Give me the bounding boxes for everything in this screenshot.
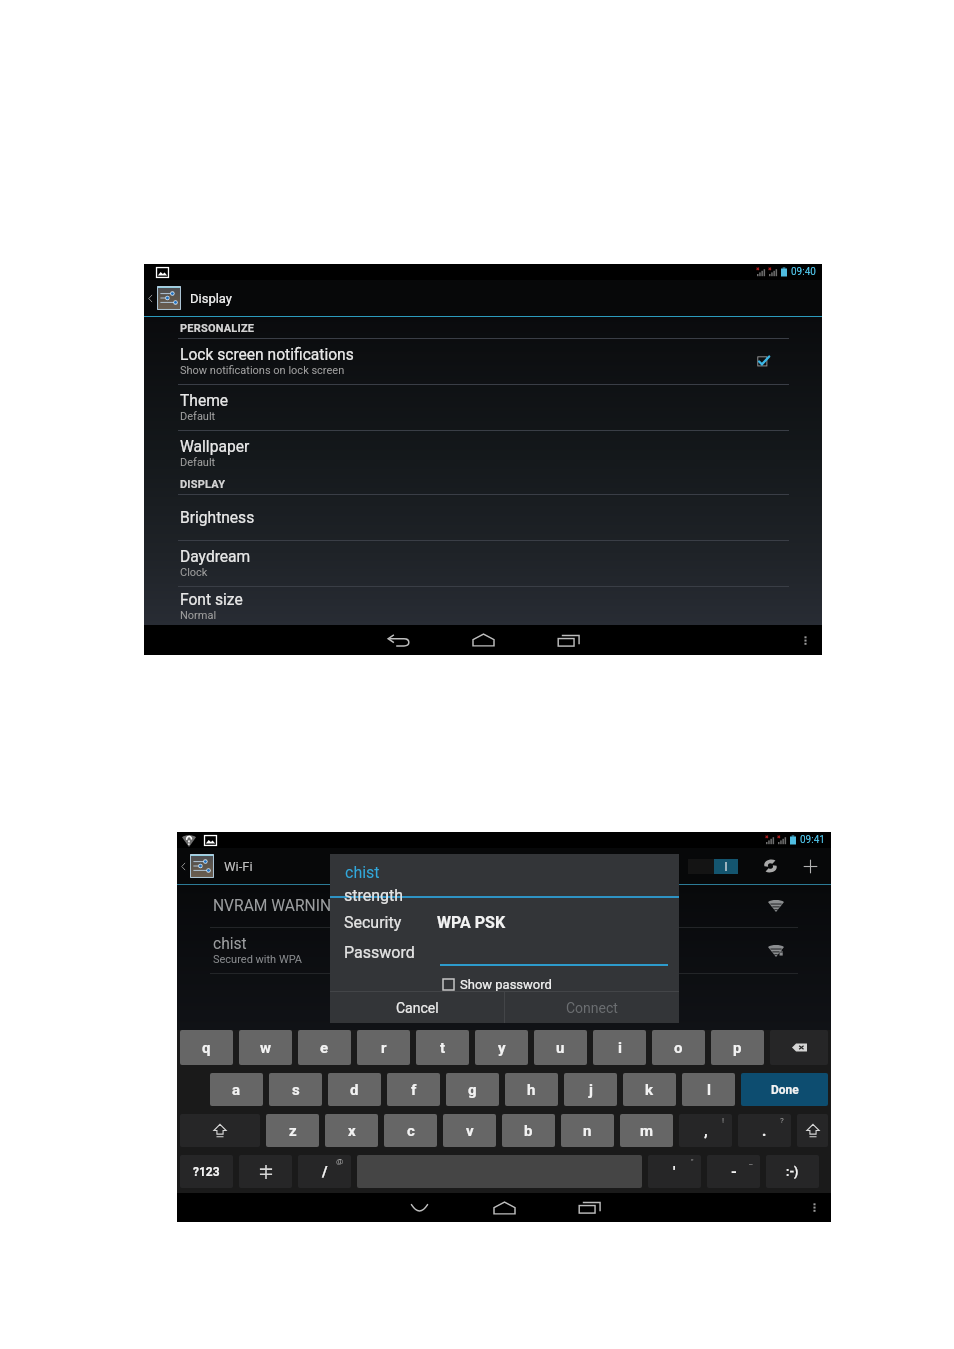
button[interactable]: Done (741, 1073, 828, 1106)
button[interactable]: d (328, 1073, 381, 1106)
staticText: f (411, 1081, 417, 1099)
button[interactable]: x (325, 1114, 378, 1147)
staticText: o (674, 1039, 683, 1057)
button[interactable]: m (620, 1114, 673, 1147)
button[interactable]: Lock screen notifications (144, 339, 822, 384)
button[interactable]: Back (356, 625, 441, 655)
staticText: t (440, 1039, 446, 1057)
button[interactable]: p (711, 1030, 764, 1065)
staticText: Show password (460, 977, 552, 992)
staticText: DISPLAY (180, 478, 226, 491)
button[interactable]: . (738, 1114, 791, 1147)
staticText: z (289, 1122, 297, 1140)
staticText: Connect (566, 1000, 618, 1016)
button[interactable]: ?123 (180, 1155, 233, 1188)
staticText: g (468, 1081, 477, 1099)
button[interactable]: / (298, 1155, 351, 1188)
button[interactable]: Back (144, 280, 232, 316)
button[interactable]: j (564, 1073, 617, 1106)
button[interactable]: r (357, 1030, 410, 1065)
button[interactable]: NVRAM WARNING: Err = 0x10 (177, 885, 831, 927)
button[interactable]: Daydream (144, 541, 822, 586)
button[interactable]: Home (441, 625, 526, 655)
button[interactable]: h (505, 1073, 558, 1106)
staticText: , (704, 1122, 708, 1140)
button[interactable]: w (239, 1030, 292, 1065)
button[interactable]: i (593, 1030, 646, 1065)
button[interactable]: a (210, 1073, 263, 1106)
staticText: Daydream (180, 548, 251, 566)
button[interactable]: Back (377, 1193, 462, 1222)
staticText: " (691, 1157, 694, 1166)
button[interactable]: Cancel (330, 992, 504, 1023)
staticText: s (292, 1081, 300, 1099)
staticText: h (527, 1081, 536, 1099)
button[interactable]: Scan (750, 848, 790, 884)
button[interactable]: Wallpaper (144, 431, 822, 476)
button[interactable]: Back (177, 848, 253, 884)
staticText: r (381, 1039, 387, 1057)
button[interactable]: z (266, 1114, 319, 1147)
staticText: WPA PSK (437, 913, 506, 932)
button[interactable]: More options (797, 1193, 831, 1222)
button[interactable]: l (682, 1073, 735, 1106)
staticText: Clock (180, 566, 208, 579)
button[interactable]: Recent apps (526, 625, 611, 655)
staticText: ' (673, 1163, 676, 1181)
staticText: Font size (180, 591, 243, 609)
staticText: k (645, 1081, 654, 1099)
button[interactable]: b (502, 1114, 555, 1147)
button[interactable]: Add network (790, 848, 830, 884)
button[interactable]: Brightness (144, 495, 822, 540)
staticText: Theme (180, 392, 229, 410)
staticText: u (556, 1039, 565, 1057)
button[interactable]: o (652, 1030, 705, 1065)
staticText: Secured with WPA (213, 953, 303, 966)
staticText: chist (345, 863, 380, 882)
button[interactable]: Show password (443, 977, 552, 992)
button[interactable]: c (384, 1114, 437, 1147)
button[interactable]: Wi-Fi on/off (688, 859, 738, 874)
staticText: y (498, 1039, 506, 1057)
staticText: q (202, 1039, 211, 1057)
button[interactable]: Font size (144, 587, 822, 625)
button[interactable]: n (561, 1114, 614, 1147)
button[interactable]: Home (462, 1193, 547, 1222)
staticText: Cancel (396, 1000, 439, 1016)
staticText: PERSONALIZE (180, 322, 255, 335)
button[interactable]: q (180, 1030, 233, 1065)
button[interactable]: Recent apps (547, 1193, 632, 1222)
button[interactable]: - (707, 1155, 760, 1188)
staticText: :-) (786, 1165, 799, 1179)
button[interactable]: g (446, 1073, 499, 1106)
button[interactable]: Connect (505, 992, 679, 1023)
button[interactable]: f (387, 1073, 440, 1106)
button[interactable]: ' (648, 1155, 701, 1188)
staticText: Wallpaper (180, 438, 250, 456)
button[interactable]: chist (177, 928, 831, 973)
button[interactable]: Shift right (797, 1114, 828, 1147)
button[interactable]: u (534, 1030, 587, 1065)
button[interactable]: More options (788, 625, 822, 655)
button[interactable]: t (416, 1030, 469, 1065)
button[interactable]: y (475, 1030, 528, 1065)
button[interactable]: k (623, 1073, 676, 1106)
other: Back (178, 861, 189, 872)
staticText: Password (344, 943, 415, 962)
staticText: m (640, 1122, 653, 1140)
button[interactable]: s (269, 1073, 322, 1106)
button[interactable]: Lock screen notifications checkbox (757, 355, 770, 368)
staticText: l (707, 1081, 711, 1099)
button[interactable]: Shift (180, 1114, 260, 1147)
staticText: / (322, 1163, 328, 1181)
staticText: Display (190, 291, 232, 306)
button[interactable]: :-) (766, 1155, 819, 1188)
button[interactable]: v (443, 1114, 496, 1147)
button[interactable]: Theme (144, 385, 822, 430)
staticText: n (583, 1122, 592, 1140)
button[interactable]: Change language (239, 1155, 292, 1188)
button[interactable]: e (298, 1030, 351, 1065)
button[interactable]: Delete (770, 1030, 828, 1065)
button[interactable]: , (679, 1114, 732, 1147)
